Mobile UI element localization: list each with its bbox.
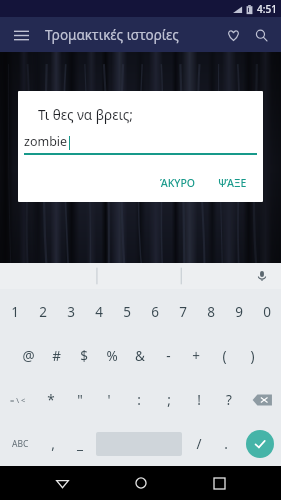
staticText: /	[196, 435, 202, 453]
button[interactable]: ;	[154, 378, 184, 422]
button[interactable]: )	[238, 334, 266, 378]
button[interactable]: .	[212, 422, 239, 466]
button[interactable]: 7	[169, 289, 197, 334]
staticText: 7	[179, 303, 187, 321]
staticText: !	[197, 391, 201, 409]
button[interactable]: +	[182, 334, 210, 378]
button[interactable]: #	[42, 334, 70, 378]
staticText: 6	[151, 303, 159, 321]
staticText: ?	[226, 391, 232, 409]
staticText: %	[106, 347, 118, 365]
button[interactable]: 3	[57, 289, 85, 334]
button[interactable]: &	[126, 334, 154, 378]
button[interactable]: !	[184, 378, 214, 422]
button[interactable]: -	[154, 334, 182, 378]
staticText: $	[80, 347, 88, 365]
staticText: #	[52, 347, 61, 365]
staticText: 4:51	[257, 2, 277, 16]
button[interactable]: /	[185, 422, 212, 466]
button[interactable]: ,	[40, 422, 66, 466]
staticText: "	[77, 391, 83, 409]
button[interactable]: 0	[253, 289, 281, 334]
button[interactable]: "	[65, 378, 94, 422]
staticText: +	[192, 347, 200, 365]
button[interactable]: @	[14, 334, 42, 378]
staticText: 3	[67, 303, 75, 321]
staticText: 1	[11, 303, 19, 321]
button[interactable]: Search	[247, 21, 275, 49]
button[interactable]: Voice input	[251, 265, 273, 287]
staticText: ABC	[12, 438, 29, 450]
button[interactable]: 6	[141, 289, 169, 334]
button[interactable]: ΆΚΥΡΟ	[156, 173, 200, 193]
button[interactable]: Favorites	[219, 21, 247, 49]
staticText: ,	[51, 435, 55, 453]
staticText: Τρομακτικές ιστορίες	[45, 26, 179, 44]
staticText: 9	[235, 303, 243, 321]
button[interactable]: Backspace	[244, 378, 281, 422]
button[interactable]: %	[98, 334, 126, 378]
button[interactable]: 8	[197, 289, 225, 334]
staticText: = \ <	[10, 395, 26, 405]
button[interactable]: Home	[124, 466, 158, 500]
staticText: 8	[207, 303, 215, 321]
staticText: (	[222, 347, 227, 365]
button[interactable]: 9	[225, 289, 253, 334]
staticText: .	[224, 435, 228, 453]
staticText: zombie	[24, 133, 68, 150]
button[interactable]: Recent apps	[202, 466, 236, 500]
button[interactable]: 2	[29, 289, 57, 334]
staticText: ;	[167, 391, 171, 409]
staticText: ΆΚΥΡΟ	[160, 176, 196, 190]
staticText: :	[137, 391, 141, 409]
button[interactable]: $	[70, 334, 98, 378]
staticText: 5	[123, 303, 131, 321]
button[interactable]: ΨΆΞΕ	[214, 173, 251, 193]
staticText: )	[250, 347, 255, 365]
button[interactable]: ABC	[0, 422, 40, 466]
staticText: _	[77, 435, 83, 453]
staticText: ΨΆΞΕ	[218, 176, 247, 190]
staticText: 2	[39, 303, 47, 321]
button[interactable]: zombie	[24, 133, 257, 150]
button[interactable]: _	[66, 422, 93, 466]
button[interactable]: = \ <	[0, 378, 36, 422]
button[interactable]: (	[210, 334, 238, 378]
button[interactable]: 4	[85, 289, 113, 334]
button[interactable]: Enter	[239, 422, 281, 466]
staticText: *	[47, 391, 55, 409]
button[interactable]: 5	[113, 289, 141, 334]
button[interactable]: :	[124, 378, 154, 422]
button[interactable]: Back	[45, 466, 79, 500]
staticText: 0	[263, 303, 271, 321]
staticText: &	[135, 347, 145, 365]
staticText: -	[166, 347, 171, 365]
staticText: 4	[95, 303, 103, 321]
staticText: @	[22, 347, 35, 365]
staticText: Τι θες να βρεις;	[38, 106, 133, 124]
button[interactable]: 1	[0, 289, 29, 334]
staticText: '	[107, 391, 111, 409]
button[interactable]: ?	[214, 378, 244, 422]
button[interactable]: Open navigation drawer	[8, 22, 34, 48]
button[interactable]: *	[36, 378, 65, 422]
button[interactable]: '	[94, 378, 124, 422]
